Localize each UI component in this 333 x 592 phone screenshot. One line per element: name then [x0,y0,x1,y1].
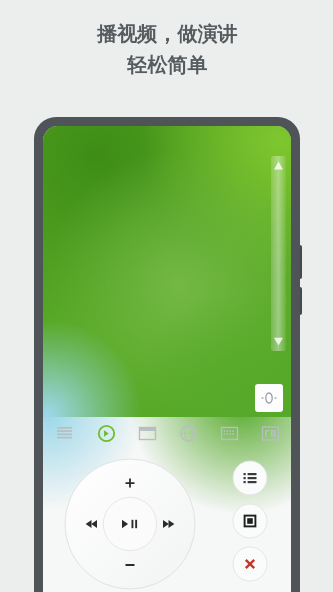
button[interactable]: Navigation wheel [65,459,195,589]
staticText: 轻松简单 [127,53,207,78]
button[interactable]: Laser pointer [255,384,283,412]
button[interactable]: Close [233,547,267,581]
button[interactable]: Menu [43,417,85,449]
staticText: 播视频，做演讲 [97,22,237,47]
button[interactable]: Scroll bar [271,156,286,351]
button[interactable]: Playlist [233,461,267,495]
button[interactable]: Function keys [250,417,291,449]
button[interactable]: Keyboard [209,417,250,449]
button[interactable]: Window [127,417,168,449]
button[interactable]: Play [85,417,127,449]
button[interactable]: Stop [233,504,267,538]
button[interactable]: Web [168,417,209,449]
